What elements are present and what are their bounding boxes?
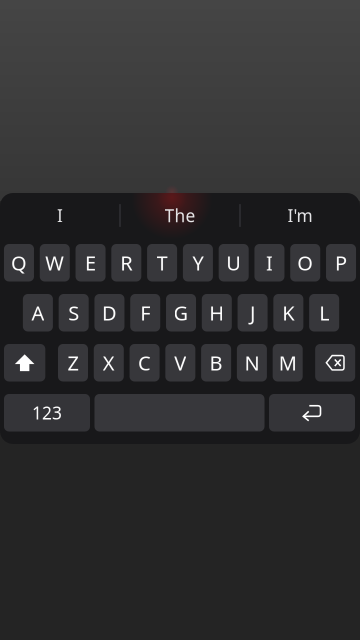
staticText: O	[297, 249, 313, 276]
staticText: W	[45, 249, 64, 276]
button[interactable]: P	[326, 244, 356, 281]
staticText: Y	[192, 249, 203, 276]
staticText: C	[138, 349, 151, 376]
staticText: B	[210, 349, 223, 376]
button[interactable]: I	[254, 244, 284, 281]
staticText: V	[174, 349, 186, 376]
button[interactable]: H	[202, 294, 232, 331]
staticText: M	[279, 349, 297, 376]
button[interactable]: L	[309, 294, 339, 331]
button[interactable]: C	[130, 344, 160, 381]
button[interactable]: T	[147, 244, 177, 281]
staticText: I	[57, 204, 63, 227]
staticText: E	[85, 249, 96, 276]
staticText: P	[335, 249, 347, 276]
staticText: H	[209, 299, 224, 326]
staticText: X	[103, 349, 115, 376]
staticText: L	[319, 299, 329, 326]
button[interactable]: The	[120, 193, 239, 238]
button[interactable]: Delete	[315, 344, 355, 381]
staticText: R	[120, 249, 132, 276]
button[interactable]: A	[23, 294, 53, 331]
button[interactable]: G	[166, 294, 196, 331]
button[interactable]: 123	[4, 394, 90, 431]
staticText: S	[68, 299, 79, 326]
staticText: J	[250, 299, 255, 326]
staticText: T	[157, 249, 168, 276]
staticText: N	[244, 349, 259, 376]
button[interactable]: Y	[183, 244, 213, 281]
button[interactable]: R	[111, 244, 141, 281]
staticText: K	[282, 299, 294, 326]
button[interactable]: K	[273, 294, 303, 331]
button[interactable]: B	[201, 344, 231, 381]
staticText: G	[173, 299, 188, 326]
staticText: I	[266, 249, 273, 276]
button[interactable]: W	[40, 244, 70, 281]
button[interactable]: I'm	[240, 193, 359, 238]
staticText: D	[102, 299, 117, 326]
button[interactable]: S	[59, 294, 89, 331]
button[interactable]: O	[290, 244, 320, 281]
button[interactable]: I	[0, 193, 119, 238]
staticText: A	[31, 299, 44, 326]
staticText: Q	[11, 249, 27, 276]
staticText: 123	[32, 401, 62, 424]
staticText: I'm	[287, 204, 312, 227]
button[interactable]: Q	[4, 244, 34, 281]
button[interactable]: V	[165, 344, 195, 381]
staticText: Z	[67, 349, 78, 376]
button[interactable]: J	[238, 294, 268, 331]
button[interactable]: X	[94, 344, 124, 381]
button[interactable]: Return	[269, 394, 355, 431]
button[interactable]: F	[130, 294, 160, 331]
button[interactable]: Z	[58, 344, 88, 381]
button[interactable]: M	[273, 344, 303, 381]
button[interactable]: D	[94, 294, 124, 331]
button[interactable]: U	[219, 244, 249, 281]
button[interactable]: Shift	[4, 344, 45, 381]
button[interactable]: E	[76, 244, 106, 281]
staticText: U	[226, 249, 241, 276]
button[interactable]: N	[237, 344, 267, 381]
staticText: F	[140, 299, 150, 326]
staticText: The	[164, 204, 195, 227]
button[interactable]: space	[94, 394, 264, 431]
